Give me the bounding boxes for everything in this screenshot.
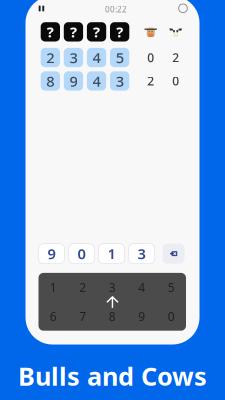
button[interactable]: 3	[97, 273, 127, 302]
staticText: 2	[46, 48, 54, 67]
staticText: 4	[138, 279, 145, 295]
staticText: ?	[116, 22, 123, 42]
staticText: 0	[147, 50, 154, 65]
button[interactable]: 4	[127, 273, 156, 302]
staticText: 0	[77, 244, 85, 263]
staticText: 1	[107, 244, 115, 263]
staticText: 1	[50, 279, 57, 295]
staticText: 4	[93, 71, 101, 91]
staticText: 5	[168, 279, 175, 295]
button[interactable]: 1	[98, 244, 124, 264]
staticText: 2	[147, 73, 154, 89]
button[interactable]: Delete	[163, 244, 185, 264]
staticText: 5	[116, 48, 124, 67]
staticText: 3	[69, 48, 77, 67]
button[interactable]: 0	[68, 244, 94, 264]
button[interactable]: 1	[38, 273, 68, 302]
staticText: 00:22	[105, 4, 127, 15]
staticText: 9	[47, 244, 55, 263]
staticText: 7	[79, 308, 86, 324]
staticText: ?	[47, 22, 54, 42]
staticText: 2	[79, 279, 86, 295]
button[interactable]: 0	[156, 302, 186, 331]
staticText: 2	[172, 50, 179, 65]
button[interactable]: 3	[129, 244, 155, 264]
button[interactable]: 5	[156, 273, 186, 302]
staticText: 3	[116, 71, 124, 91]
staticText: 3	[109, 279, 116, 295]
button[interactable]: 8	[97, 302, 127, 331]
staticText: 9	[138, 308, 145, 324]
button[interactable]: 7	[68, 302, 97, 331]
button[interactable]: 2	[68, 273, 97, 302]
staticText: ?	[70, 22, 77, 42]
button[interactable]: 9	[38, 244, 64, 264]
staticText: 3	[138, 244, 146, 263]
button[interactable]: 6	[38, 302, 68, 331]
staticText: ?	[93, 22, 100, 42]
button[interactable]: 9	[127, 302, 156, 331]
staticText: 8	[109, 308, 116, 324]
staticText: 6	[50, 308, 57, 324]
staticText: 9	[69, 71, 77, 91]
staticText: Bulls and Cows	[18, 359, 207, 393]
staticText: 4	[93, 48, 101, 67]
staticText: 0	[168, 308, 175, 324]
staticText: 8	[46, 71, 54, 91]
staticText: 0	[172, 73, 179, 89]
